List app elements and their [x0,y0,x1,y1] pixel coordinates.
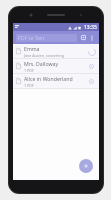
button[interactable]: Alice in Wonderland [13,74,99,88]
button[interactable]: Open document [87,62,96,71]
button[interactable]: Settings [79,33,88,42]
staticText: Alice in Wonderland [24,75,73,82]
staticText: Jane Austen, converting [24,53,64,58]
button[interactable]: More options [88,34,96,42]
staticText: 1 PDF [24,68,34,73]
button[interactable]: PDF to Text [16,34,77,42]
button[interactable]: Converting [87,47,96,56]
staticText: 1 PDF [24,83,34,88]
button[interactable]: Mrs. Dalloway [13,59,99,73]
button[interactable]: Add PDF [79,159,93,173]
staticText: Emma [24,45,40,52]
staticText: Mrs. Dalloway [24,60,59,67]
staticText: 13:35 [84,24,97,31]
button[interactable]: Open document [87,77,96,86]
staticText: PDF to Text [18,35,45,42]
button[interactable]: Emma [13,44,99,58]
